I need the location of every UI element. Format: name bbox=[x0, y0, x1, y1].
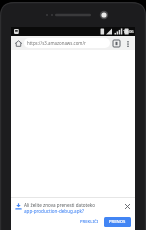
button[interactable]: PRENOS bbox=[104, 217, 131, 227]
staticText: PRENOS bbox=[109, 219, 126, 225]
button[interactable]: Close bbox=[123, 202, 132, 211]
staticText: app-production-debug.apk? bbox=[24, 208, 84, 214]
button[interactable]: Home bbox=[13, 38, 24, 49]
button[interactable]: More options bbox=[122, 38, 133, 49]
staticText: https://s3.amazonaws.com/r bbox=[27, 40, 86, 46]
staticText: PREKLIČI bbox=[80, 219, 99, 225]
button[interactable]: PREKLIČI bbox=[77, 217, 102, 227]
staticText: Ali želite znova prenesti datoteko bbox=[24, 202, 96, 208]
button[interactable]: https://s3.amazonaws.com/r bbox=[24, 38, 110, 48]
button[interactable]: Tabs bbox=[111, 38, 122, 49]
staticText: 18:06 bbox=[123, 29, 134, 35]
